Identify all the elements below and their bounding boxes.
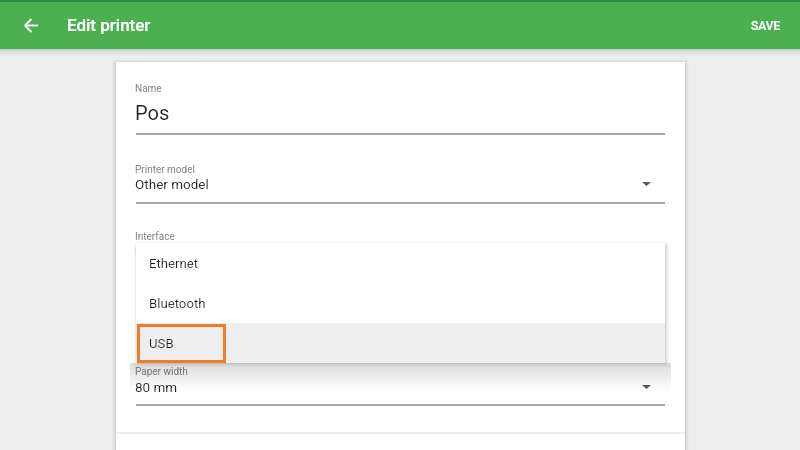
staticText: Interface bbox=[135, 231, 175, 243]
staticText: Edit printer bbox=[67, 15, 151, 35]
staticText: SAVE bbox=[751, 19, 781, 33]
button[interactable]: SAVE bbox=[738, 8, 794, 41]
staticText: Other model bbox=[135, 176, 209, 192]
staticText: USB bbox=[149, 336, 174, 351]
staticText: Paper width bbox=[135, 366, 188, 378]
staticText: Bluetooth bbox=[149, 296, 206, 311]
staticText: Name bbox=[135, 83, 162, 95]
staticText: Printer model bbox=[135, 164, 195, 176]
staticText: Pos bbox=[135, 101, 170, 124]
button[interactable]: Back bbox=[13, 8, 48, 43]
button[interactable]: Bluetooth bbox=[136, 283, 665, 323]
button[interactable]: USB bbox=[136, 323, 665, 363]
staticText: Ethernet bbox=[149, 256, 199, 271]
staticText: USB bbox=[135, 244, 161, 260]
staticText: 80 mm bbox=[135, 379, 178, 395]
button[interactable]: Ethernet bbox=[136, 243, 665, 283]
